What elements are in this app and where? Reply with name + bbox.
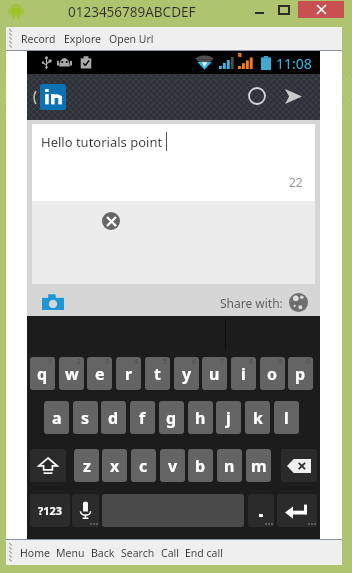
button[interactable]: Uploading [246,85,268,107]
staticText: 0123456789ABCDEF [68,3,196,21]
button[interactable]: p [288,357,313,390]
button[interactable]: y [174,357,199,390]
button[interactable]: d [101,401,126,434]
staticText: k [253,407,263,429]
staticText: Search [121,546,155,560]
button[interactable]: Home [17,540,53,565]
staticText: r [125,363,133,385]
button[interactable]: l [274,401,299,434]
staticText: u [209,363,220,385]
staticText: 2 [77,357,82,367]
button[interactable]: o [260,357,285,390]
button[interactable]: k [245,401,270,434]
button[interactable]: End call [182,540,226,565]
staticText: l [284,407,289,429]
staticText: b [195,455,206,477]
button[interactable]: v [160,449,185,482]
button[interactable]: i [231,357,256,390]
staticText: s [81,407,90,429]
button[interactable]: a [44,401,69,434]
staticText: t [154,363,161,385]
staticText: 4 [134,357,139,367]
staticText: Hello tutorials point [41,133,163,151]
button[interactable]: b [188,449,213,482]
staticText: 5 [163,357,168,367]
button[interactable]: x [102,449,127,482]
button[interactable]: g [159,401,184,434]
staticText: 6 [192,357,197,367]
button[interactable]: e [87,357,112,390]
staticText: End call [185,546,223,560]
button[interactable]: m [246,449,271,482]
staticText: q [37,363,48,385]
staticText: 7 [220,357,225,367]
staticText: n [224,455,235,477]
staticText: Explore [64,32,101,46]
button[interactable]: Remove image [102,212,120,230]
staticText: 1 [48,357,53,367]
staticText: 3 [105,357,110,367]
staticText: Record [21,32,56,46]
button[interactable]: w [59,357,84,390]
button[interactable]: Menu [53,540,88,565]
staticText: e [95,363,105,385]
button[interactable]: r [116,357,141,390]
staticText: j [226,407,231,429]
staticText: 11:08 [276,54,312,73]
staticText: z [83,455,91,477]
button[interactable]: LinkedIn [40,84,66,110]
button[interactable]: Maximize [271,1,296,18]
staticText: Home [20,546,50,560]
staticText: Menu [56,546,85,560]
staticText: o [267,363,278,385]
button[interactable]: Explore [60,27,105,50]
button[interactable]: u [202,357,227,390]
staticText: 22 [289,174,303,190]
button[interactable]: Voice input [72,494,99,527]
button[interactable]: c [131,449,156,482]
staticText: m [251,455,267,477]
staticText: g [166,407,177,429]
button[interactable]: Search [118,540,158,565]
button[interactable]: Back [88,540,118,565]
staticText: p [295,363,306,385]
button[interactable]: Minimize [247,1,271,18]
staticText: a [52,407,62,429]
button[interactable]: Back [28,86,40,108]
button[interactable]: z [74,449,99,482]
button[interactable]: Close [298,1,344,18]
button[interactable]: Enter [277,494,317,527]
button[interactable]: Symbols [30,494,70,527]
staticText: c [139,455,148,477]
staticText: f [139,407,146,429]
staticText: 9 [278,357,283,367]
button[interactable]: Backspace [281,449,317,482]
button[interactable]: Open Url [105,27,158,50]
button[interactable]: t [145,357,170,390]
staticText: 8 [249,357,254,367]
staticText: v [168,455,178,477]
staticText: x [110,455,120,477]
staticText: Open Url [109,32,154,46]
button[interactable]: Hello tutorials point [32,124,315,201]
button[interactable]: Shift [30,449,66,482]
button[interactable]: Share with: [220,293,308,312]
staticText: y [182,363,192,385]
staticText: w [65,363,79,385]
button[interactable]: n [217,449,242,482]
staticText: Back [91,546,115,560]
button[interactable]: s [73,401,98,434]
button[interactable]: Add photo [42,294,64,310]
button[interactable]: j [216,401,241,434]
staticText: 0 [306,357,311,367]
staticText: d [108,407,119,429]
button[interactable]: Period [248,494,274,527]
button[interactable]: Send [283,86,304,106]
button[interactable]: Record [17,27,60,50]
staticText: Call [161,546,179,560]
button[interactable]: f [130,401,155,434]
button[interactable]: h [188,401,213,434]
button[interactable]: Call [158,540,182,565]
button[interactable]: q [30,357,55,390]
